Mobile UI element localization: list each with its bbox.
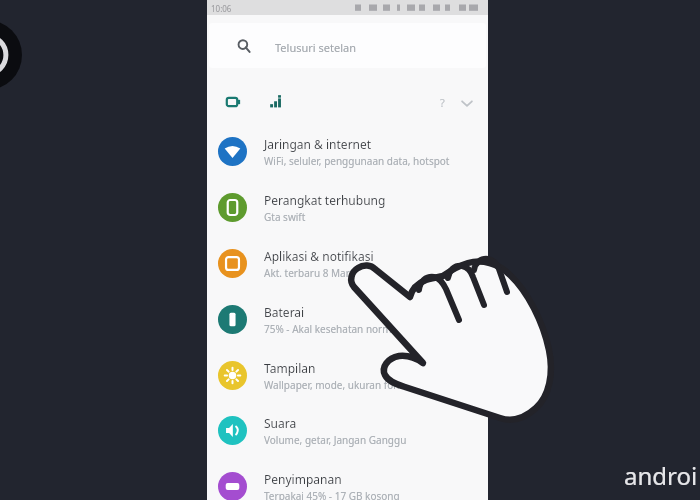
button[interactable]: Baterai	[207, 292, 488, 347]
staticText: Aplikasi & notifikasi	[264, 248, 374, 264]
button[interactable]: Penyimpanan	[207, 459, 488, 500]
staticText: Volume, getar, Jangan Ganggu	[264, 433, 407, 447]
button[interactable]: Data usage	[268, 93, 286, 111]
button[interactable]: Battery saver	[225, 93, 243, 111]
staticText: Telusuri setelan	[275, 40, 356, 55]
staticText: Gta swift	[264, 210, 306, 224]
button[interactable]: Telusuri setelan	[209, 23, 486, 68]
staticText: Penyimpanan	[264, 471, 342, 487]
staticText: ?	[440, 95, 445, 110]
button[interactable]: Tampilan	[207, 348, 488, 403]
button[interactable]: Suara	[207, 403, 488, 458]
staticText: Suara	[264, 415, 297, 431]
staticText: 75% - Akal kesehatan normal	[264, 322, 400, 336]
staticText: Baterai	[264, 304, 305, 320]
staticText: Akt. terbaru 8 Maret	[264, 266, 359, 280]
staticText: androi	[624, 459, 698, 492]
button[interactable]: Jaringan & internet	[207, 124, 488, 179]
staticText: WiFi, seluler, penggunaan data, hotspot	[264, 154, 450, 168]
staticText: Terpakai 45% - 17 GB kosong	[264, 489, 400, 500]
staticText: 10:06	[211, 3, 232, 14]
staticText: Perangkat terhubung	[264, 192, 386, 208]
staticText: Tampilan	[264, 360, 316, 376]
button[interactable]: Aplikasi & notifikasi	[207, 236, 488, 291]
staticText: Wallpaper, mode, ukuran font	[264, 378, 403, 392]
staticText: Jaringan & internet	[264, 136, 372, 152]
button[interactable]: Perangkat terhubung	[207, 180, 488, 235]
button[interactable]: Expand	[460, 96, 474, 110]
